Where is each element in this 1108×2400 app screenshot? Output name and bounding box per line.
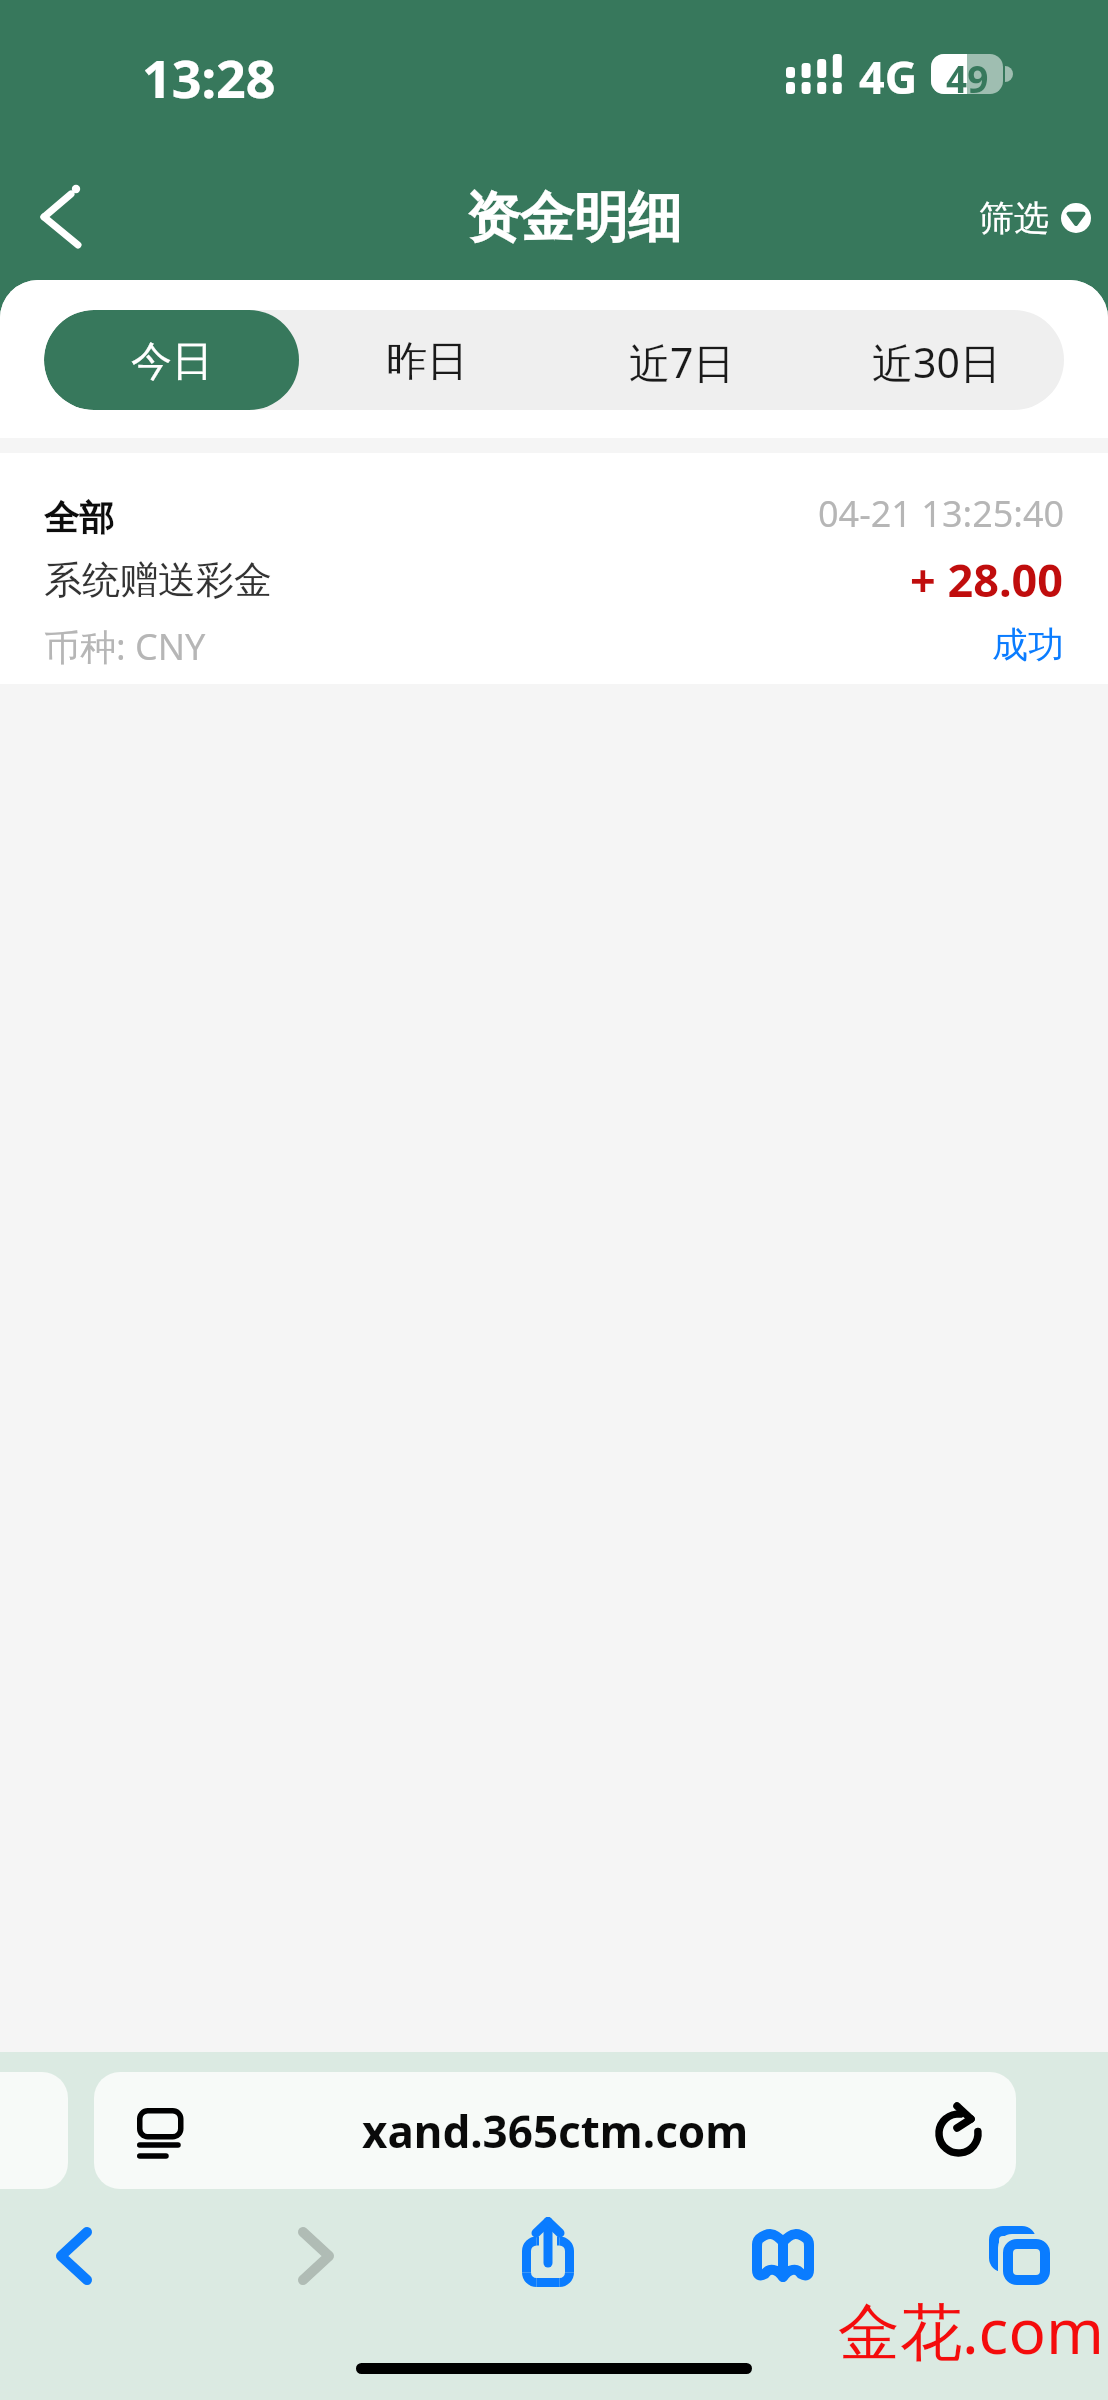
button[interactable]: 今日 [44, 310, 299, 410]
staticText: 金花.com [838, 2288, 1104, 2373]
staticText: 币种: CNY [44, 622, 206, 671]
staticText: xand.365ctm.com [362, 2101, 749, 2161]
staticText: 系统赠送彩金 [44, 556, 272, 604]
staticText: 13:28 [142, 42, 276, 113]
staticText: 4G [859, 46, 918, 107]
staticText: 全部 [44, 496, 114, 540]
button[interactable]: Forward [256, 2196, 376, 2316]
staticText: 近7日 [629, 334, 735, 390]
other: Page settings [137, 2108, 181, 2157]
button[interactable]: 近7日 [554, 310, 809, 410]
staticText: 近30日 [872, 334, 1001, 390]
button[interactable]: Back [14, 2196, 134, 2316]
staticText: + 28.00 [910, 549, 1064, 610]
staticText: 今日 [131, 336, 213, 388]
button[interactable]: Share [496, 2192, 600, 2312]
button[interactable]: 昨日 [299, 310, 554, 410]
staticText: 资金明细 [466, 184, 682, 252]
other: Reload [932, 2094, 988, 2166]
button[interactable]: 全部 [0, 453, 1108, 684]
button[interactable]: 近30日 [809, 310, 1064, 410]
button[interactable]: Back [24, 168, 104, 264]
staticText: 04-21 13:25:40 [818, 489, 1065, 538]
button[interactable]: Tabs [959, 2195, 1079, 2315]
staticText: 49 [946, 54, 989, 93]
button[interactable]: xand.365ctm.com [94, 2072, 1016, 2189]
staticText: 昨日 [386, 336, 468, 388]
staticText: 筛选 [979, 196, 1049, 240]
staticText: 成功 [992, 622, 1064, 667]
button[interactable]: 筛选 [979, 196, 1091, 240]
button[interactable]: Bookmarks [723, 2195, 843, 2315]
